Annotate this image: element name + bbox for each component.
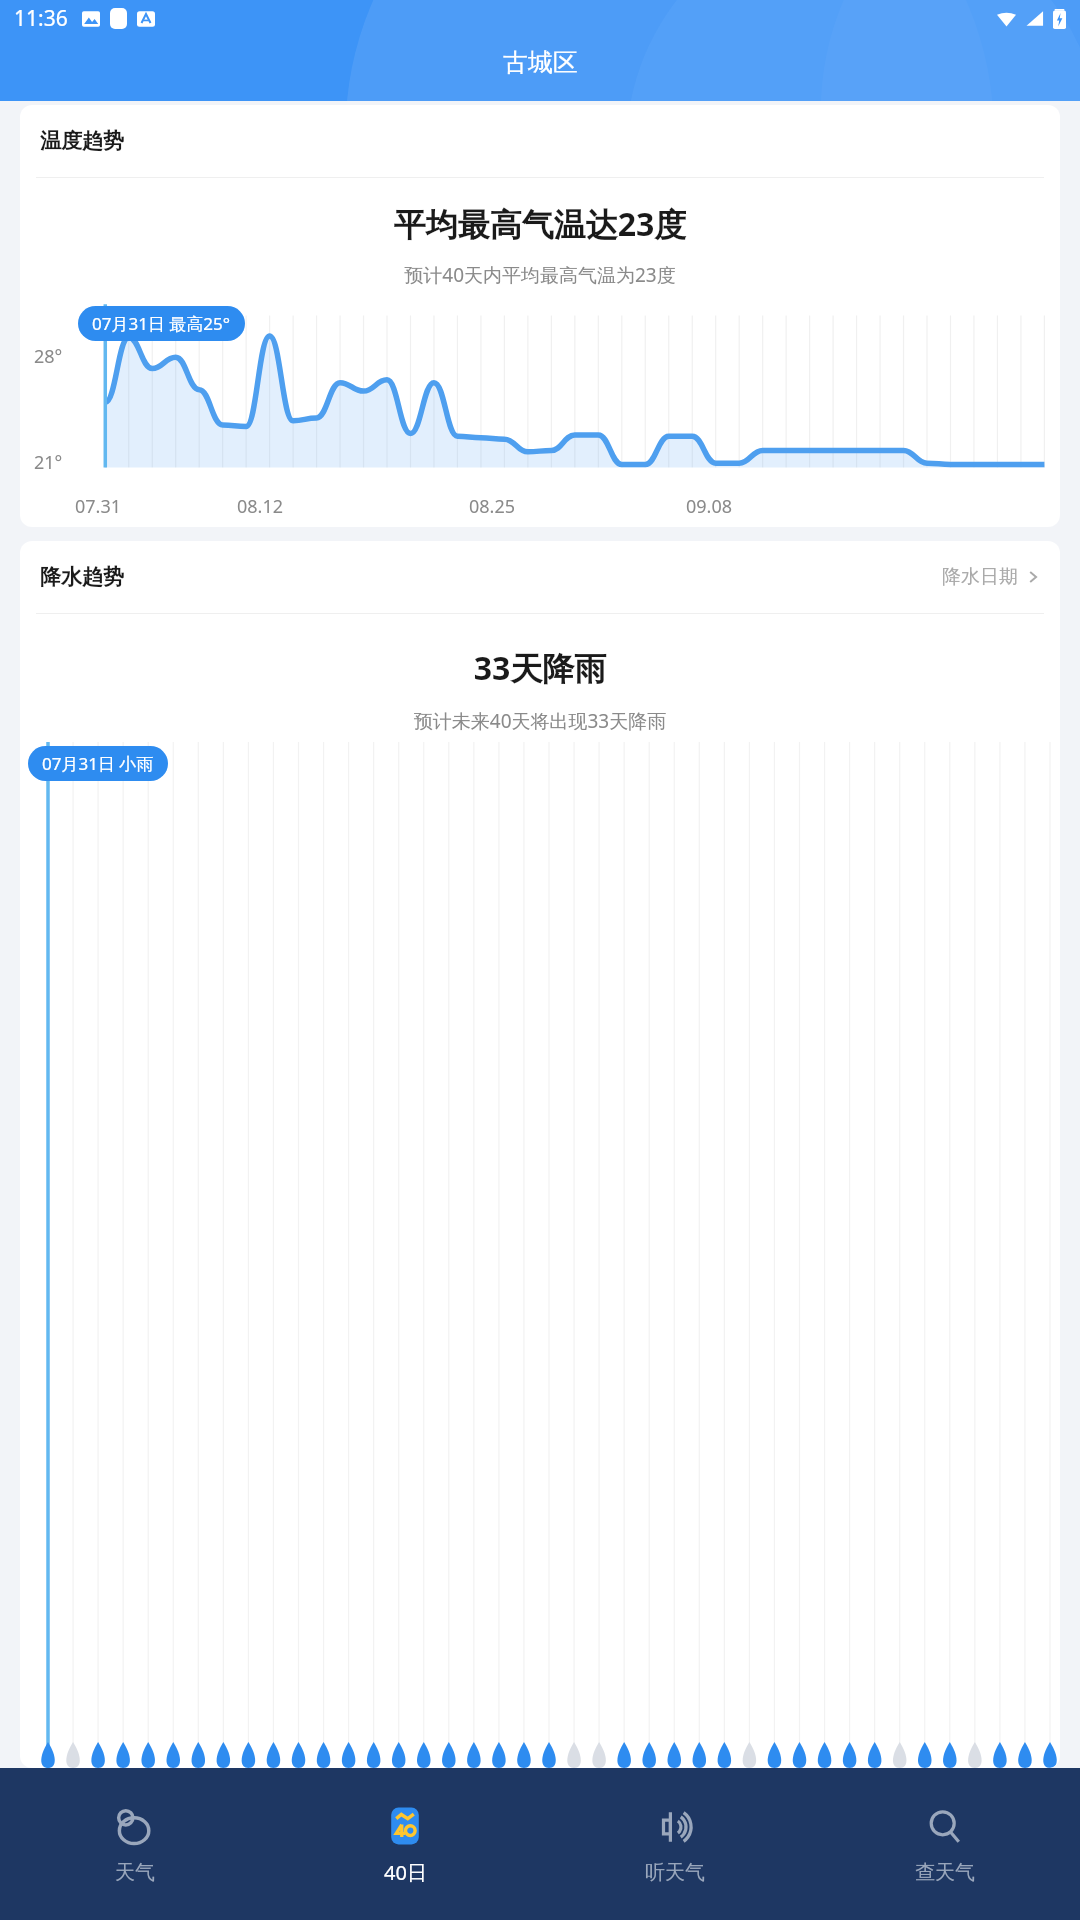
staticText: 28°	[34, 344, 63, 369]
staticText: 平均最高气温达23度	[20, 202, 1060, 246]
staticText: 08.12	[237, 494, 284, 519]
staticText: 查天气	[915, 1860, 975, 1885]
staticText: 08.25	[469, 494, 516, 519]
other: 40日	[382, 1803, 428, 1849]
staticText: 预计40天内平均最高气温为23度	[20, 262, 1060, 288]
staticText: 07月31日 最高25°	[92, 312, 231, 335]
other: 查天气	[922, 1804, 968, 1850]
staticText: 降水趋势	[40, 564, 124, 590]
other: 天气	[112, 1804, 158, 1850]
other: 听天气	[652, 1804, 698, 1850]
staticText: 21°	[34, 450, 63, 475]
button[interactable]: 听天气	[540, 1768, 810, 1920]
button[interactable]: 天气	[0, 1768, 270, 1920]
staticText: 温度趋势	[40, 128, 124, 154]
button[interactable]: 40日	[270, 1768, 540, 1920]
staticText: 40日	[384, 1859, 427, 1886]
button[interactable]: 温度趋势	[20, 105, 1060, 527]
staticText: 降水日期	[942, 565, 1018, 589]
staticText: 古城区	[503, 47, 578, 78]
staticText: 天气	[115, 1860, 155, 1885]
staticText: 07月31日 小雨	[42, 752, 154, 775]
staticText: 07.31	[75, 494, 122, 519]
staticText: 听天气	[645, 1860, 705, 1885]
staticText: 33天降雨	[20, 646, 1060, 690]
staticText: 09.08	[686, 494, 733, 519]
button[interactable]: 查天气	[810, 1768, 1080, 1920]
button[interactable]: 降水趋势	[40, 541, 1040, 613]
staticText: 11:36	[14, 4, 68, 33]
staticText: 预计未来40天将出现33天降雨	[20, 708, 1060, 734]
